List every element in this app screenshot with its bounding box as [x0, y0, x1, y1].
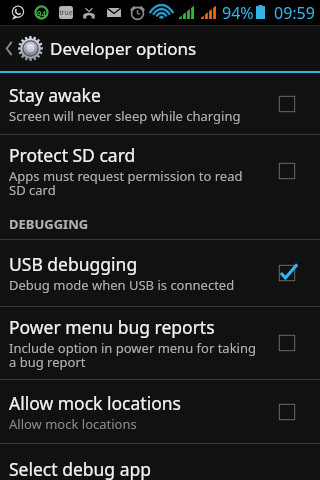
- staticText: Include option in power menu for taking …: [9, 339, 256, 371]
- staticText: Select debug app: [9, 457, 151, 480]
- staticText: 94: [35, 8, 48, 19]
- staticText: USB debugging: [9, 252, 138, 276]
- staticText: true: [59, 8, 73, 18]
- staticText: Screen will never sleep while charging: [9, 107, 241, 125]
- staticText: Developer options: [50, 37, 197, 60]
- staticText: Protect SD card: [9, 143, 136, 167]
- button[interactable]: Protect SD card: [0, 135, 320, 207]
- staticText: Stay awake: [9, 83, 101, 107]
- staticText: 09:59: [274, 2, 315, 24]
- button[interactable]: USB debugging: [0, 240, 320, 306]
- button[interactable]: Stay awake: [0, 73, 320, 134]
- staticText: 94%: [222, 2, 254, 24]
- staticText: Allow mock locations: [9, 415, 137, 433]
- staticText: Power menu bug reports: [9, 315, 215, 339]
- staticText: Debug mode when USB is connected: [9, 276, 235, 294]
- button[interactable]: Power menu bug reports: [0, 307, 320, 379]
- staticText: Allow mock locations: [9, 391, 181, 415]
- button[interactable]: Back: [0, 25, 320, 71]
- button[interactable]: Select debug app: [0, 444, 320, 480]
- button[interactable]: Allow mock locations: [0, 380, 320, 443]
- staticText: Apps must request permission to read SD …: [9, 167, 243, 199]
- staticText: DEBUGGING: [9, 215, 89, 233]
